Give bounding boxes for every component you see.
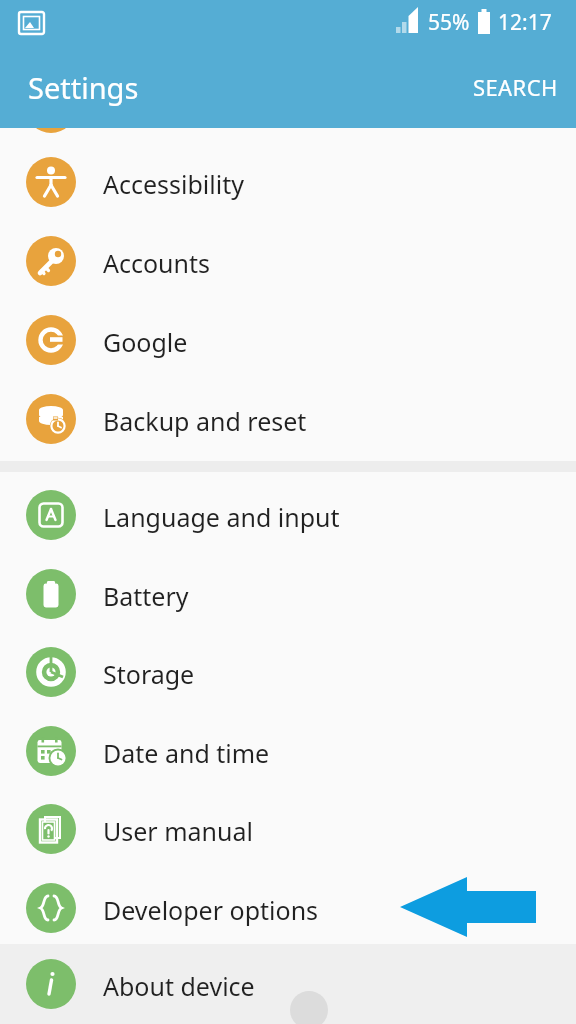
button[interactable]: About device	[0, 944, 576, 1024]
staticText: Settings	[28, 68, 139, 107]
button[interactable]: Accounts	[0, 221, 576, 300]
staticText: User manual	[103, 814, 253, 848]
button[interactable]: Developer options	[0, 868, 576, 947]
button[interactable]: User manual	[0, 789, 576, 868]
staticText: Date and time	[103, 736, 270, 770]
staticText: Developer options	[103, 893, 319, 927]
staticText: SEARCH	[473, 72, 558, 102]
staticText: 12:17	[498, 8, 552, 37]
button[interactable]: Battery	[0, 554, 576, 633]
staticText: 55%	[428, 8, 470, 37]
button[interactable]: Backup and reset	[0, 379, 576, 458]
staticText: Google	[103, 325, 188, 359]
staticText: Accessibility	[103, 167, 244, 201]
button[interactable]: SEARCH	[455, 60, 576, 114]
staticText: Backup and reset	[103, 404, 307, 438]
button[interactable]: Language and input	[0, 475, 576, 554]
button[interactable]: Google	[0, 300, 576, 379]
staticText: Battery	[103, 579, 189, 613]
staticText: About device	[103, 969, 255, 1003]
button[interactable]: Storage	[0, 632, 576, 711]
button[interactable]: Date and time	[0, 711, 576, 790]
staticText: Language and input	[103, 500, 340, 534]
staticText: Storage	[103, 657, 195, 691]
staticText: Accounts	[103, 246, 211, 280]
button[interactable]: Accessibility	[0, 142, 576, 221]
